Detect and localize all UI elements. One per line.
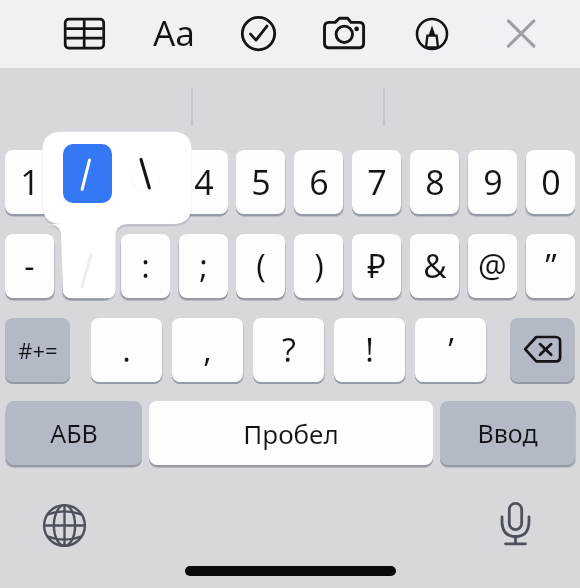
staticText: 7 [367,159,387,205]
staticText: 8 [425,159,445,205]
button[interactable]: 0 [526,150,575,214]
button[interactable]: Table [58,12,110,56]
staticText: - [24,244,35,288]
staticText: 3 [136,159,156,205]
button[interactable]: Done [234,9,283,58]
staticText: 9 [483,159,503,205]
staticText: ’ [448,328,454,372]
button[interactable]: ? [253,318,324,382]
button[interactable]: 7 [352,150,401,214]
button[interactable]: 4 [179,150,228,214]
button[interactable]: Close [496,10,542,56]
button[interactable]: @ [468,234,517,298]
staticText: ; [199,244,208,288]
staticText: Aa [153,9,196,57]
staticText: ” [545,244,557,288]
button[interactable]: 2 [63,150,112,214]
staticText: 4 [194,159,214,205]
button[interactable]: ( [236,234,285,298]
button[interactable]: Backspace [510,318,574,382]
staticText: Ввод [477,416,538,450]
button[interactable]: Camera [318,9,370,55]
button[interactable]: ” [526,234,575,298]
staticText: 6 [309,159,329,205]
staticText: ) [314,244,324,288]
button[interactable]: Backslash [125,144,174,203]
button[interactable]: & [410,234,459,298]
button[interactable]: 9 [468,150,517,214]
button[interactable]: 6 [294,150,343,214]
button[interactable]: Dictation [491,499,540,548]
staticText: #+= [18,335,58,365]
staticText: ! [365,328,374,372]
button[interactable]: ) [294,234,343,298]
button[interactable]: Change keyboard [40,501,89,550]
staticText: ( [256,244,266,288]
button[interactable]: 1 [5,150,54,214]
staticText: , [203,328,212,372]
button[interactable]: Slash [63,144,112,203]
staticText: Пробел [243,416,339,451]
button[interactable]: 8 [410,150,459,214]
button[interactable]: : [121,234,170,298]
button[interactable]: ! [334,318,405,382]
button[interactable]: ₽ [352,234,401,298]
button[interactable]: ’ [415,318,486,382]
button[interactable]: Ввод [440,401,575,465]
staticText: ₽ [367,244,386,288]
staticText: & [423,244,447,288]
staticText: 1 [20,159,40,205]
staticText: АБВ [50,416,98,450]
button[interactable]: #+= [5,318,70,382]
staticText: : [141,244,150,288]
button[interactable]: 3 [121,150,170,214]
button[interactable]: 5 [236,150,285,214]
staticText: 2 [78,159,98,205]
staticText: 5 [251,159,271,205]
button[interactable]: Пробел [149,401,433,465]
button[interactable]: Markup [415,17,448,50]
staticText: @ [478,244,507,288]
staticText: / [82,244,94,288]
staticText: 0 [541,159,561,205]
button[interactable]: . [91,318,162,382]
button[interactable]: , [172,318,243,382]
button[interactable]: АБВ [6,401,142,465]
staticText: ? [282,328,296,372]
staticText: . [122,328,131,372]
button[interactable]: - [5,234,54,298]
button[interactable]: Aa [148,9,200,57]
button[interactable]: / [63,234,112,298]
button[interactable]: ; [179,234,228,298]
